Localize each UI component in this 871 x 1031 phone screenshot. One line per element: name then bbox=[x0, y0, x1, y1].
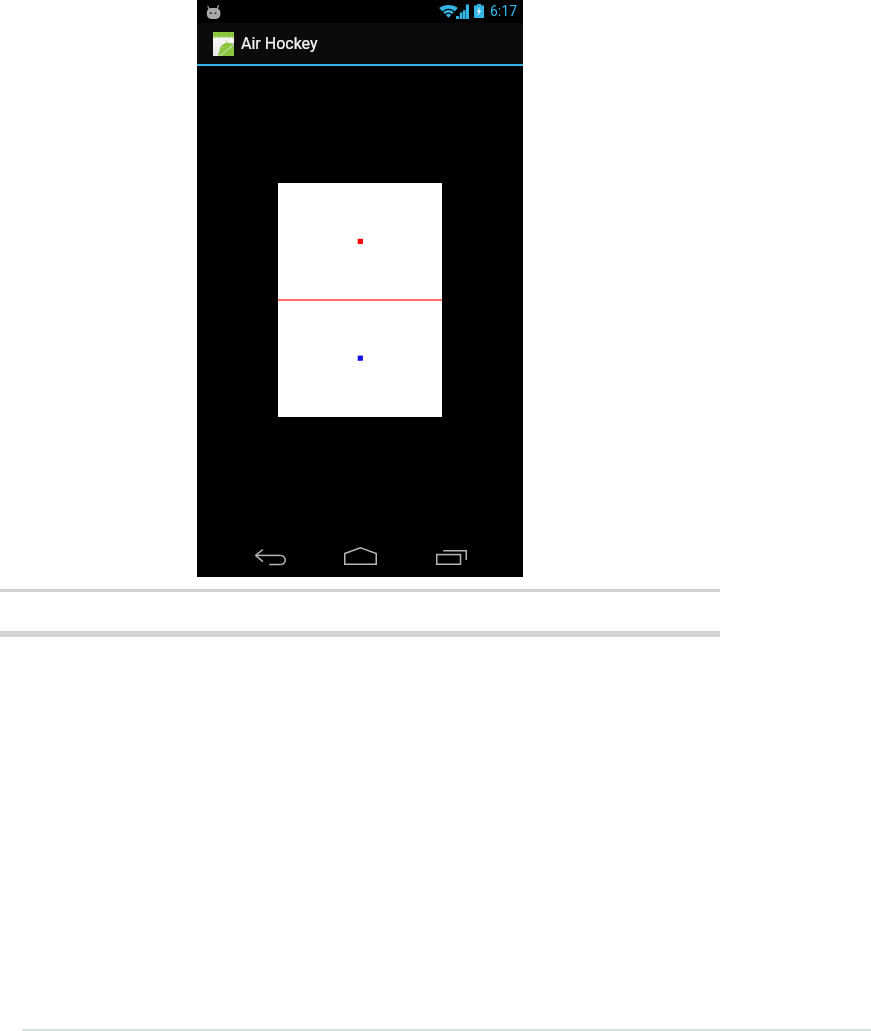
staticText: Air Hockey bbox=[241, 34, 318, 53]
button[interactable]: Home bbox=[311, 531, 409, 577]
button[interactable]: Recent apps bbox=[402, 531, 500, 577]
button[interactable]: Back bbox=[221, 531, 319, 577]
staticText: 6:17 bbox=[490, 3, 517, 19]
button[interactable]: Air hockey table bbox=[197, 67, 523, 531]
button[interactable]: Air Hockey bbox=[197, 23, 327, 64]
